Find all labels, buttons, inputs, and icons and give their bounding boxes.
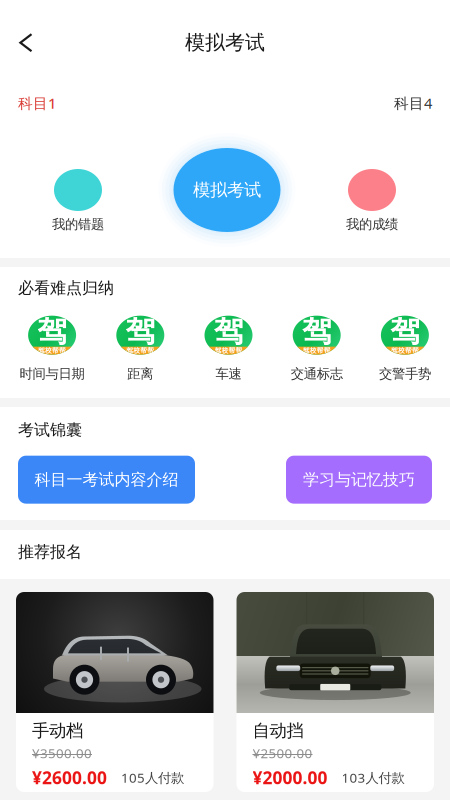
staticText: ¥2600.00: [32, 766, 107, 789]
staticText: 交警手势: [379, 366, 431, 382]
staticText: 交通标志: [291, 366, 343, 382]
staticText: 驾校帮帮: [303, 347, 331, 355]
button[interactable]: 驾校帮帮: [8, 316, 96, 382]
staticText: 驾校帮帮: [391, 347, 419, 355]
staticText: 驾: [214, 314, 243, 350]
staticText: 驾校帮帮: [38, 347, 66, 355]
button[interactable]: 科目一考试内容介绍: [18, 456, 195, 504]
staticText: 驾: [38, 314, 67, 350]
staticText: ¥2500.00: [252, 744, 312, 762]
button[interactable]: 驾校帮帮: [96, 316, 184, 382]
button[interactable]: 驾校帮帮: [273, 316, 361, 382]
staticText: 103人付款: [341, 769, 404, 786]
staticText: 距离: [127, 366, 153, 382]
staticText: ¥3500.00: [32, 744, 92, 762]
button[interactable]: 模拟考试: [156, 121, 294, 258]
staticText: ¥2000.00: [252, 766, 327, 789]
button[interactable]: 自动挡: [236, 592, 434, 792]
staticText: 考试锦囊: [18, 420, 82, 440]
staticText: 科目一考试内容介绍: [34, 470, 178, 489]
staticText: 模拟考试: [193, 179, 261, 201]
staticText: 必看难点归纳: [18, 278, 114, 298]
staticText: 驾: [126, 314, 155, 350]
staticText: 手动档: [32, 720, 83, 741]
staticText: 模拟考试: [185, 30, 265, 55]
staticText: 学习与记忆技巧: [303, 470, 415, 489]
staticText: 我的错题: [52, 216, 104, 232]
staticText: 科目1: [18, 93, 56, 113]
staticText: 车速: [215, 366, 241, 382]
staticText: 驾校帮帮: [214, 347, 242, 355]
staticText: 驾校帮帮: [126, 347, 154, 355]
staticText: 推荐报名: [18, 542, 82, 562]
button[interactable]: 驾校帮帮: [184, 316, 273, 382]
button[interactable]: 学习与记忆技巧: [286, 456, 432, 504]
staticText: 科目4: [394, 93, 432, 113]
button[interactable]: Back: [0, 21, 47, 64]
staticText: 驾: [302, 314, 331, 350]
staticText: 时间与日期: [20, 366, 85, 382]
staticText: 我的成绩: [346, 216, 398, 232]
button[interactable]: 驾校帮帮: [361, 316, 449, 382]
button[interactable]: 科目1: [18, 93, 56, 113]
button[interactable]: 科目4: [394, 93, 432, 113]
staticText: 自动挡: [252, 720, 303, 741]
staticText: 驾: [390, 314, 419, 350]
button[interactable]: 我的成绩: [294, 121, 450, 258]
staticText: 105人付款: [121, 769, 184, 786]
button[interactable]: 我的错题: [0, 121, 156, 258]
button[interactable]: 手动档: [16, 592, 213, 792]
